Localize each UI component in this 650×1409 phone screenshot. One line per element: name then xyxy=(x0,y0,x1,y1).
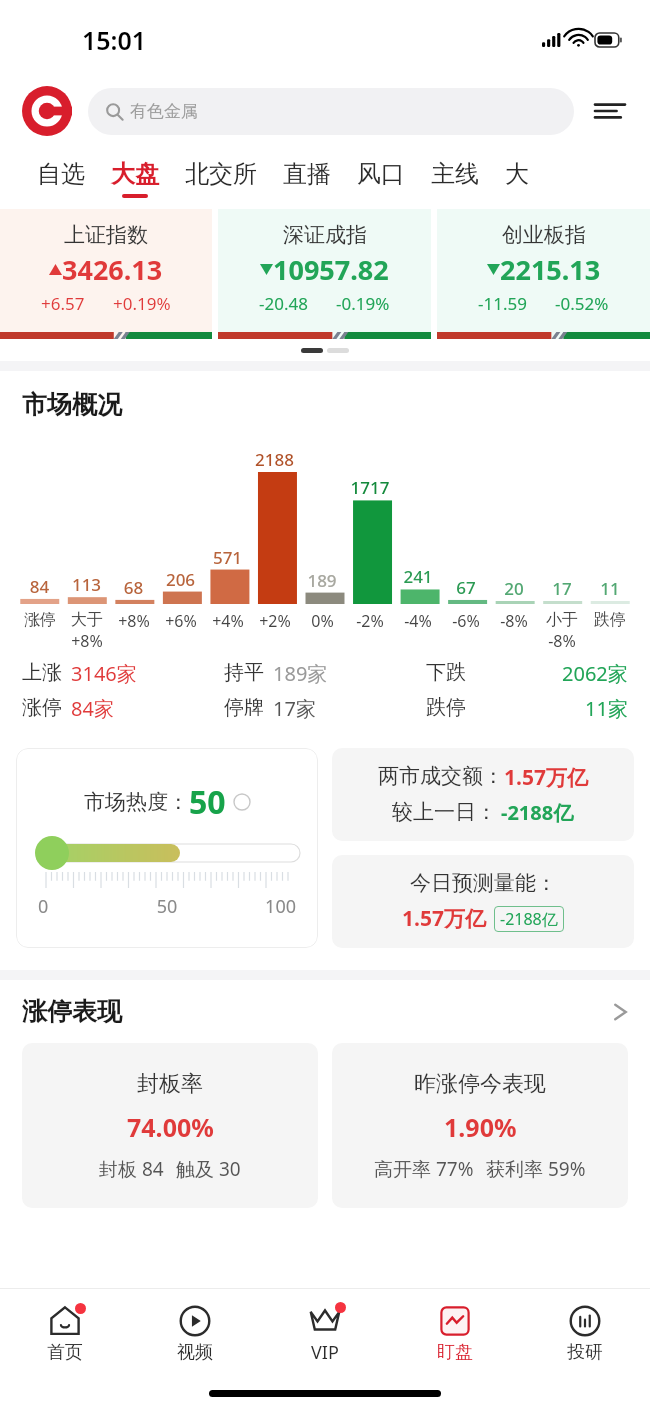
button[interactable]: 上证指数 xyxy=(0,209,212,339)
staticText: 1.90% xyxy=(444,1110,517,1144)
staticText: -8% xyxy=(548,630,576,652)
button[interactable]: 涨停表现 xyxy=(0,996,650,1027)
staticText: -8% xyxy=(500,610,528,632)
button[interactable]: 两市成交额： xyxy=(332,748,634,841)
staticText: 北交所 xyxy=(185,159,257,189)
staticText: 大 xyxy=(505,159,529,189)
button[interactable]: 风口 xyxy=(344,159,418,198)
staticText: 两市成交额： xyxy=(378,763,504,789)
button[interactable]: VIP xyxy=(260,1289,390,1377)
staticText: 首页 xyxy=(47,1341,83,1364)
staticText: 创业板指 xyxy=(502,222,586,248)
staticText: 50 xyxy=(189,780,226,824)
staticText: 自选 xyxy=(37,159,85,189)
staticText: 50 xyxy=(124,894,210,919)
staticText: -2188亿 xyxy=(501,799,574,826)
staticText: 获利率 59% xyxy=(486,1156,586,1182)
staticText: -4% xyxy=(404,610,432,632)
staticText: 封板 84 xyxy=(99,1156,164,1182)
staticText: 206 xyxy=(157,568,204,591)
staticText: 2215.13 xyxy=(500,251,601,288)
staticText: 189家 xyxy=(273,660,328,687)
staticText: -6% xyxy=(452,610,480,632)
staticText: 涨停表现 xyxy=(22,996,122,1027)
button[interactable]: 有色金属 xyxy=(88,88,574,135)
staticText: 67 xyxy=(442,576,490,599)
button[interactable]: 创业板指 xyxy=(437,209,650,339)
button[interactable]: 大盘 xyxy=(98,159,172,198)
staticText: 今日预测量能： xyxy=(410,870,557,896)
staticText: 20 xyxy=(490,577,538,600)
button[interactable]: 封板率 xyxy=(22,1043,318,1208)
staticText: 风口 xyxy=(357,159,405,189)
button[interactable]: 视频 xyxy=(130,1289,260,1377)
staticText: 2062家 xyxy=(562,660,628,687)
staticText: 跌停 xyxy=(426,695,466,720)
staticText: 0% xyxy=(311,610,334,632)
button[interactable]: 自选 xyxy=(24,159,98,198)
button[interactable]: 首页 xyxy=(0,1289,130,1377)
staticText: +0.19% xyxy=(113,292,171,315)
staticText: 大于 xyxy=(71,610,103,630)
staticText: VIP xyxy=(311,1340,339,1365)
button[interactable]: 昨涨停今表现 xyxy=(332,1043,628,1208)
staticText: 跌停 xyxy=(594,610,626,630)
staticText: 68 xyxy=(110,576,157,599)
staticText: 停牌 xyxy=(224,695,264,720)
staticText: 涨停 xyxy=(24,610,56,630)
staticText: +4% xyxy=(212,610,244,632)
button[interactable]: Menu xyxy=(590,91,630,131)
staticText: 大盘 xyxy=(111,159,159,189)
staticText: 17 xyxy=(538,577,586,600)
staticText: 持平 xyxy=(224,660,264,685)
button[interactable]: App logo xyxy=(20,84,74,138)
staticText: 市场概况 xyxy=(22,389,122,420)
staticText: 2188 xyxy=(251,448,298,471)
staticText: 1.57万亿 xyxy=(402,904,486,933)
staticText: 深证成指 xyxy=(283,222,367,248)
staticText: -20.48 xyxy=(259,292,308,315)
staticText: 1.57万亿 xyxy=(504,763,588,792)
staticText: 3426.13 xyxy=(62,251,163,288)
staticText: 189 xyxy=(298,569,346,592)
staticText: 上证指数 xyxy=(64,222,148,248)
button[interactable]: 市场热度： xyxy=(16,748,318,948)
staticText: 触及 30 xyxy=(176,1156,241,1182)
staticText: 11家 xyxy=(585,695,628,722)
staticText: 571 xyxy=(204,546,251,569)
button[interactable]: 直播 xyxy=(270,159,344,198)
staticText: 主线 xyxy=(431,159,479,189)
staticText: 盯盘 xyxy=(437,1341,473,1364)
staticText: -0.52% xyxy=(555,292,609,315)
button[interactable]: 盯盘 xyxy=(390,1289,520,1377)
staticText: 封板率 xyxy=(137,1070,203,1098)
staticText: +6% xyxy=(165,610,197,632)
staticText: -2% xyxy=(356,610,384,632)
staticText: +2% xyxy=(259,610,291,632)
staticText: 84家 xyxy=(71,695,114,722)
staticText: +6.57 xyxy=(41,292,85,315)
staticText: 高开率 77% xyxy=(374,1156,474,1182)
staticText: 1717 xyxy=(346,476,394,499)
button[interactable]: 大 xyxy=(492,159,542,198)
staticText: 11 xyxy=(586,577,634,600)
button[interactable]: 深证成指 xyxy=(218,209,431,339)
staticText: 100 xyxy=(210,894,296,919)
staticText: 113 xyxy=(63,573,110,596)
staticText: +8% xyxy=(71,630,103,652)
staticText: -0.19% xyxy=(336,292,390,315)
staticText: -11.59 xyxy=(478,292,527,315)
staticText: 涨停 xyxy=(22,695,62,720)
button[interactable]: 北交所 xyxy=(172,159,270,198)
staticText: 下跌 xyxy=(426,660,466,685)
staticText: 84 xyxy=(16,575,63,598)
staticText: 74.00% xyxy=(127,1110,214,1144)
button[interactable]: 今日预测量能： xyxy=(332,855,634,948)
staticText: +8% xyxy=(118,610,150,632)
staticText: 昨涨停今表现 xyxy=(414,1070,546,1098)
button[interactable]: 主线 xyxy=(418,159,492,198)
staticText: 投研 xyxy=(567,1341,603,1364)
button[interactable]: 投研 xyxy=(520,1289,650,1377)
staticText: 10957.82 xyxy=(273,251,389,288)
staticText: 上涨 xyxy=(22,660,62,685)
